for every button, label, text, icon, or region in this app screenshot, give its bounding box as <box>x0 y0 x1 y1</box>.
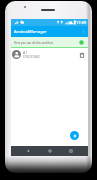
staticText: A1 <box>23 50 28 55</box>
button[interactable]: Back <box>23 146 33 156</box>
staticText: 57002376842 <box>23 55 40 59</box>
button[interactable]: A1 <box>11 48 88 60</box>
staticText: Here you can do this and that <box>14 41 53 45</box>
button[interactable]: Recent apps <box>66 146 76 156</box>
staticText: 17:09 <box>76 20 87 25</box>
button[interactable]: Add contact <box>70 131 79 140</box>
button[interactable]: Delete <box>77 50 86 59</box>
staticText: AndroidManager <box>14 29 47 35</box>
button[interactable]: More options <box>79 27 88 36</box>
button[interactable]: Here you can do this and that <box>11 37 88 48</box>
button[interactable]: Home <box>45 146 55 156</box>
